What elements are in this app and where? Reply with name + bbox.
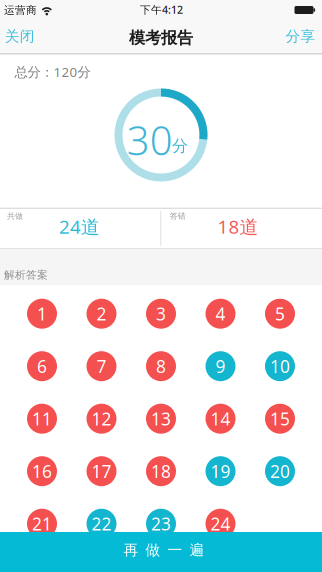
button[interactable]: 题目22: [86, 509, 116, 539]
button[interactable]: 题目14: [205, 404, 235, 434]
staticText: 20: [270, 460, 290, 483]
button[interactable]: 题目18: [146, 456, 176, 486]
staticText: 18道: [217, 214, 258, 239]
staticText: 23: [151, 512, 171, 535]
button[interactable]: 题目8: [146, 351, 176, 381]
staticText: 再 做 一 遍: [123, 541, 204, 559]
staticText: 24道: [59, 214, 100, 239]
button[interactable]: 题目1: [27, 299, 57, 329]
button[interactable]: 题目6: [27, 351, 57, 381]
button[interactable]: 题目16: [27, 456, 57, 486]
button[interactable]: 题目13: [146, 404, 176, 434]
button[interactable]: 再 做 一 遍: [0, 532, 322, 572]
staticText: 13: [151, 407, 171, 430]
staticText: 7: [96, 355, 106, 378]
staticText: 30: [127, 113, 173, 166]
staticText: 4: [215, 302, 225, 325]
button[interactable]: 题目15: [265, 404, 295, 434]
button[interactable]: 题目7: [86, 351, 116, 381]
button[interactable]: 题目20: [265, 456, 295, 486]
button[interactable]: 题目21: [27, 509, 57, 539]
staticText: 17: [91, 460, 111, 483]
staticText: 1: [37, 302, 47, 325]
button[interactable]: 题目23: [146, 509, 176, 539]
staticText: 8: [156, 355, 166, 378]
staticText: 15: [270, 407, 290, 430]
staticText: 18: [151, 460, 171, 483]
button[interactable]: 题目5: [265, 299, 295, 329]
staticText: 9: [215, 355, 225, 378]
staticText: 分享: [285, 27, 315, 45]
staticText: 运营商: [4, 4, 37, 17]
staticText: 2: [96, 302, 106, 325]
staticText: 16: [32, 460, 52, 483]
staticText: 19: [210, 460, 230, 483]
button[interactable]: 题目24: [205, 509, 235, 539]
button[interactable]: 题目10: [265, 351, 295, 381]
button[interactable]: 分享: [285, 27, 315, 45]
staticText: 6: [37, 355, 47, 378]
staticText: 总分：120分: [15, 63, 91, 81]
staticText: 模考报告: [129, 28, 193, 48]
button[interactable]: 题目9: [205, 351, 235, 381]
staticText: 21: [32, 512, 52, 535]
staticText: 下午4:12: [140, 2, 183, 17]
button[interactable]: 题目3: [146, 299, 176, 329]
staticText: 分: [172, 136, 188, 156]
staticText: 12: [91, 407, 111, 430]
button[interactable]: 题目4: [205, 299, 235, 329]
staticText: 10: [270, 355, 290, 378]
staticText: 解析答案: [4, 268, 48, 281]
staticText: 24: [210, 512, 230, 535]
staticText: 22: [91, 512, 111, 535]
button[interactable]: 题目17: [86, 456, 116, 486]
staticText: 14: [210, 407, 230, 430]
button[interactable]: 关闭: [5, 27, 35, 45]
staticText: 关闭: [5, 27, 35, 45]
staticText: 5: [275, 302, 285, 325]
button[interactable]: 题目12: [86, 404, 116, 434]
staticText: 答错: [170, 211, 186, 221]
staticText: 3: [156, 302, 166, 325]
staticText: 共做: [7, 211, 23, 221]
button[interactable]: 题目11: [27, 404, 57, 434]
button[interactable]: 题目2: [86, 299, 116, 329]
staticText: 11: [32, 407, 52, 430]
button[interactable]: 题目19: [205, 456, 235, 486]
